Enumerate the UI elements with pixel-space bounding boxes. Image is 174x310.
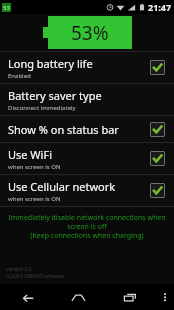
staticText: Use WiFi (8, 147, 52, 162)
button[interactable]: Battery saver type (0, 84, 174, 115)
staticText: Enabled (8, 72, 31, 80)
button[interactable]: Long battery life (0, 52, 174, 83)
button[interactable]: More options (156, 284, 174, 310)
staticText: Battery saver type (8, 88, 102, 103)
button[interactable]: Home (52, 284, 104, 310)
staticText: Immediately disable network connections … (8, 213, 166, 240)
button[interactable]: Toggle setting (149, 121, 166, 138)
button[interactable]: Back (0, 284, 52, 310)
staticText: 53% (71, 20, 109, 46)
button[interactable]: Toggle setting (149, 59, 166, 76)
staticText: (c)2013 DMKHD software (6, 273, 65, 280)
staticText: when screen is ON (8, 163, 61, 171)
staticText: Use Cellular network (8, 179, 116, 194)
staticText: Long battery life (8, 56, 93, 71)
staticText: when screen is ON (8, 195, 61, 203)
button[interactable]: Toggle setting (149, 182, 166, 199)
button[interactable]: Use Cellular network (0, 175, 174, 206)
staticText: 53 (3, 4, 10, 12)
staticText: Show % on status bar (8, 122, 119, 137)
button[interactable]: Recent apps (104, 284, 156, 310)
button[interactable]: Toggle setting (149, 150, 166, 167)
staticText: version 2.0 (6, 266, 32, 273)
staticText: Disconnect immediately (8, 104, 76, 112)
staticText: 21:47 (148, 1, 172, 13)
button[interactable]: Use WiFi (0, 143, 174, 174)
button[interactable]: Show % on status bar (0, 116, 174, 142)
